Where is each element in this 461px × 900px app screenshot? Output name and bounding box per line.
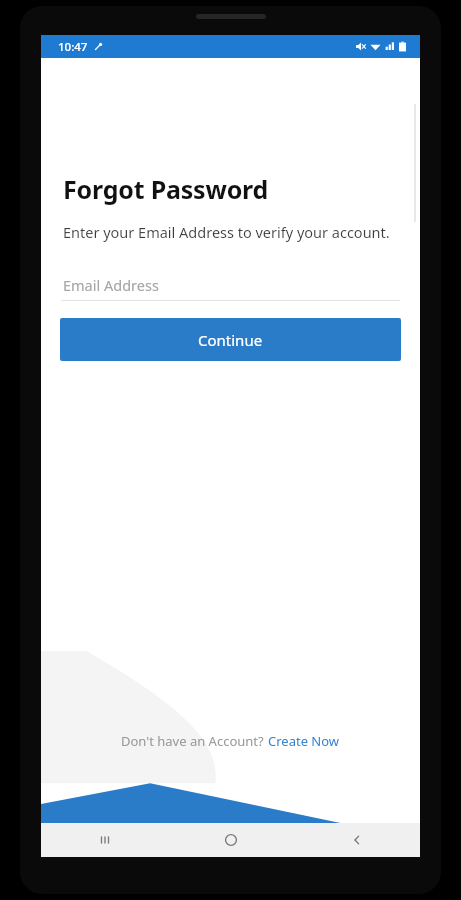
staticText: 10:47 bbox=[58, 39, 88, 55]
button[interactable]: Continue bbox=[60, 318, 401, 361]
button[interactable]: Email Address bbox=[61, 272, 400, 301]
button[interactable]: Home bbox=[168, 823, 294, 857]
button[interactable]: Create Now bbox=[268, 732, 340, 750]
staticText: Email Address bbox=[63, 275, 159, 295]
staticText: Don't have an Account? bbox=[121, 732, 268, 750]
staticText: Continue bbox=[198, 330, 263, 350]
button[interactable]: Recent apps bbox=[41, 823, 168, 857]
button[interactable]: Back bbox=[294, 823, 420, 857]
staticText: Create Now bbox=[268, 732, 340, 750]
staticText: Enter your Email Address to verify your … bbox=[63, 222, 390, 242]
staticText: Forgot Password bbox=[63, 172, 269, 206]
